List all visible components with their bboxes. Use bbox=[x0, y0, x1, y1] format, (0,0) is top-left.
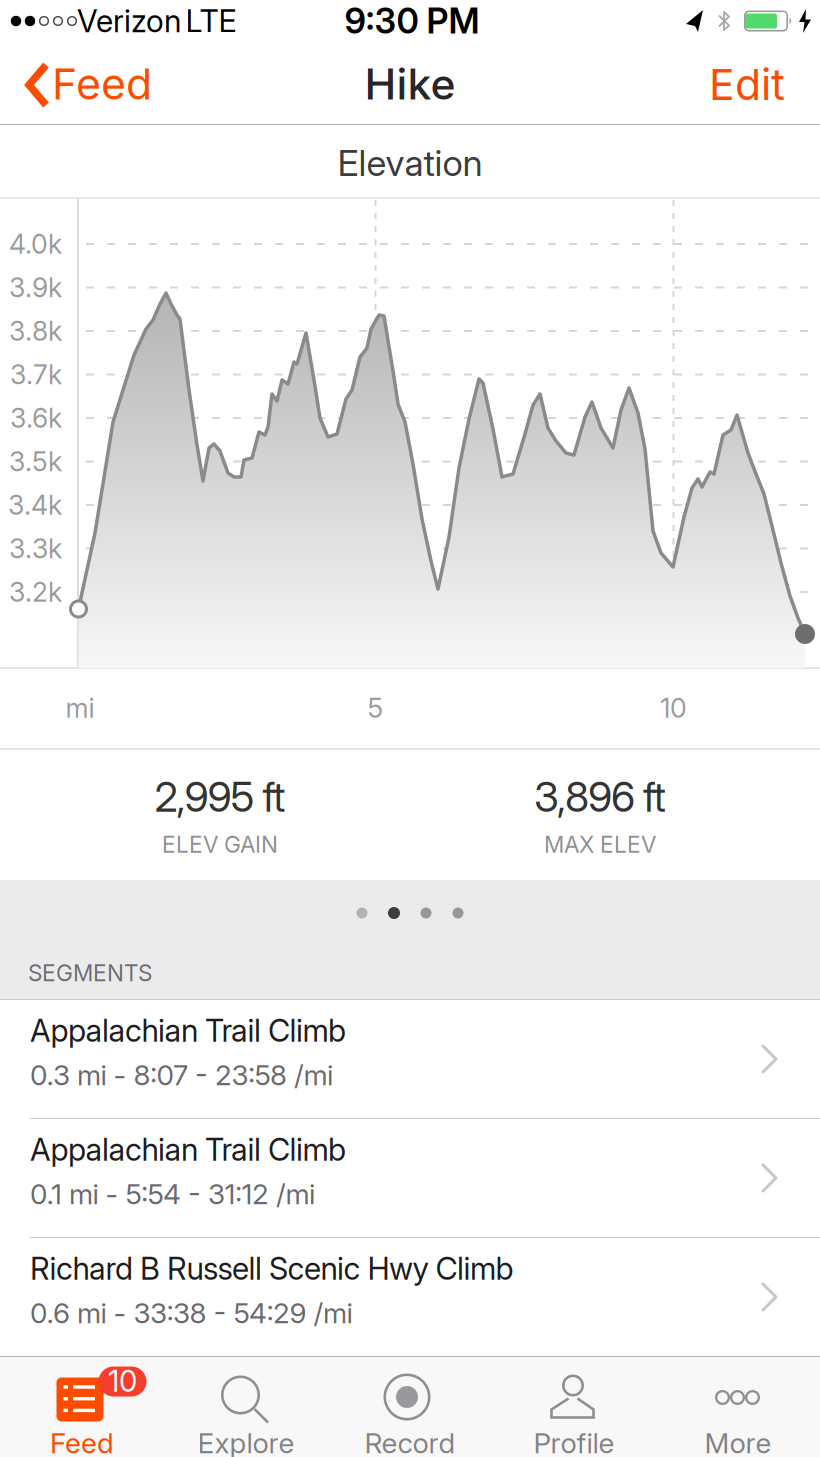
staticText: 3.7k bbox=[10, 359, 62, 390]
staticText: 3.6k bbox=[10, 402, 62, 434]
staticText: 3,896 ft bbox=[534, 772, 666, 821]
staticText: 10 bbox=[108, 1364, 137, 1398]
staticText: 2,995 ft bbox=[154, 772, 285, 821]
staticText: Profile bbox=[533, 1426, 614, 1457]
button[interactable]: Record bbox=[328, 1357, 492, 1457]
button[interactable]: Explore bbox=[164, 1357, 328, 1457]
button[interactable]: Feed bbox=[0, 1357, 164, 1457]
staticText: 0.6 mi - 33:38 - 54:29 /mi bbox=[30, 1297, 352, 1330]
staticText: LTE bbox=[185, 3, 236, 39]
staticText: Record bbox=[364, 1426, 455, 1457]
staticText: More bbox=[704, 1426, 771, 1457]
staticText: MAX ELEV bbox=[544, 831, 656, 858]
staticText: Explore bbox=[197, 1426, 294, 1457]
staticText: 3.2k bbox=[9, 576, 62, 608]
staticText: ELEV GAIN bbox=[162, 831, 278, 858]
staticText: 0.1 mi - 5:54 - 31:12 /mi bbox=[30, 1178, 315, 1211]
staticText: 0.3 mi - 8:07 - 23:58 /mi bbox=[30, 1059, 333, 1092]
staticText: Appalachian Trail Climb bbox=[30, 1012, 346, 1049]
staticText: 5 bbox=[367, 692, 383, 724]
staticText: 3.5k bbox=[9, 446, 62, 477]
staticText: Edit bbox=[709, 59, 785, 110]
button[interactable]: Appalachian Trail Climb bbox=[0, 1000, 820, 1118]
staticText: SEGMENTS bbox=[28, 960, 152, 986]
button[interactable]: More bbox=[656, 1357, 820, 1457]
staticText: 3.8k bbox=[9, 315, 62, 347]
staticText: Appalachian Trail Climb bbox=[30, 1131, 346, 1168]
staticText: 9:30 PM bbox=[344, 1, 479, 41]
staticText: Elevation bbox=[337, 142, 482, 184]
staticText: 3.4k bbox=[8, 489, 62, 521]
button[interactable]: Richard B Russell Scenic Hwy Climb bbox=[0, 1238, 820, 1356]
button[interactable]: Back to Feed bbox=[0, 44, 160, 125]
button[interactable]: Profile bbox=[492, 1357, 656, 1457]
staticText: Richard B Russell Scenic Hwy Climb bbox=[30, 1250, 513, 1287]
staticText: Feed bbox=[52, 59, 152, 109]
staticText: 4.0k bbox=[9, 228, 62, 260]
button[interactable]: Appalachian Trail Climb bbox=[0, 1119, 820, 1237]
staticText: 3.9k bbox=[9, 272, 62, 303]
staticText: 3.3k bbox=[9, 533, 62, 564]
staticText: Verizon bbox=[77, 3, 181, 39]
staticText: Hike bbox=[364, 59, 455, 109]
staticText: mi bbox=[65, 692, 94, 724]
button[interactable]: Edit bbox=[687, 44, 807, 125]
staticText: Feed bbox=[50, 1426, 114, 1457]
staticText: 10 bbox=[660, 692, 687, 724]
